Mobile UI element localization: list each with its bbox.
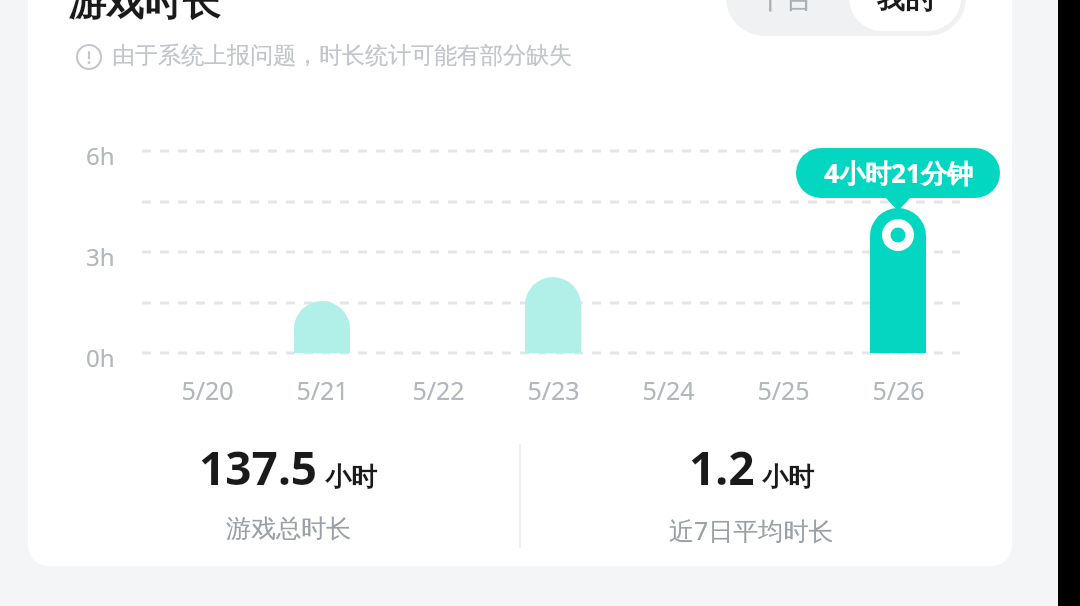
staticText: 5/23 — [527, 373, 580, 407]
staticText: 5/20 — [181, 373, 234, 407]
staticText: 6h — [86, 139, 115, 172]
staticText: 游戏总时长 — [226, 513, 351, 544]
staticText: 5/21 — [296, 373, 349, 407]
staticText: 5/26 — [872, 373, 925, 407]
staticText: 游戏时长 — [68, 0, 220, 26]
button[interactable]: 137.5 — [60, 436, 515, 554]
staticText: 小时 — [762, 461, 814, 494]
staticText: 小时 — [325, 461, 377, 494]
staticText: 137.5 — [199, 436, 318, 499]
button[interactable]: 4小时21分钟 — [796, 148, 1000, 198]
staticText: 由于系统上报问题，时长统计可能有部分缺失 — [112, 41, 572, 70]
staticText: 4小时21分钟 — [824, 155, 973, 191]
staticText: 近7日平均时长 — [669, 513, 834, 547]
staticText: 5/24 — [642, 373, 695, 407]
staticText: 1.2 — [689, 436, 755, 499]
staticText: 平台 — [757, 0, 813, 16]
button[interactable]: 1.2 — [524, 436, 979, 554]
staticText: 5/22 — [412, 373, 465, 407]
staticText: 5/25 — [757, 373, 810, 407]
staticText: 0h — [86, 341, 115, 374]
button[interactable]: 我的 — [849, 0, 961, 31]
staticText: 3h — [86, 240, 115, 273]
staticText: 我的 — [877, 0, 933, 16]
button[interactable]: 平台 — [726, 0, 844, 36]
